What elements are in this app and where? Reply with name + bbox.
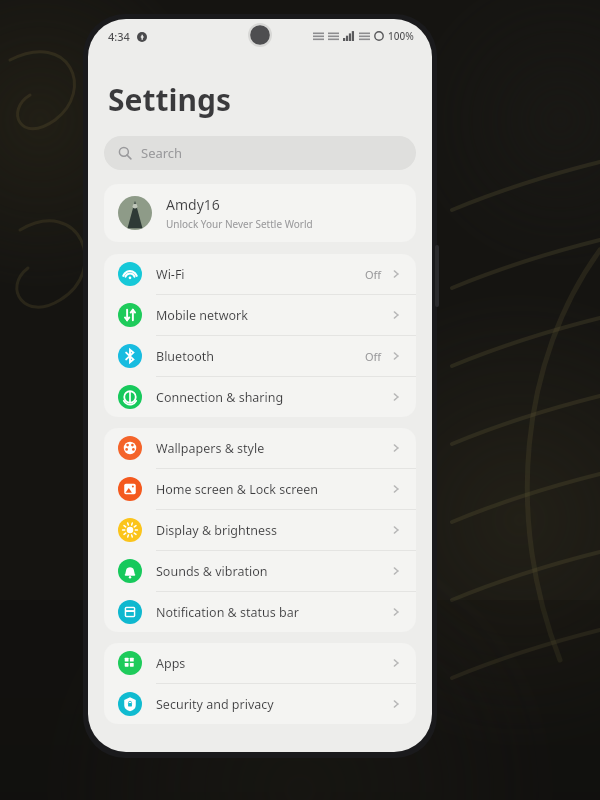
staticText: Settings (108, 79, 231, 120)
button[interactable]: Notification & status bar (104, 592, 416, 632)
button[interactable]: Home screen & Lock screen (104, 469, 416, 509)
staticText: Home screen & Lock screen (156, 481, 390, 498)
staticText: Apps (156, 655, 390, 672)
button[interactable]: Sounds & vibration (104, 551, 416, 591)
staticText: Wallpapers & style (156, 440, 390, 457)
staticText: Off (365, 349, 382, 364)
button[interactable]: Security and privacy (104, 684, 416, 724)
button[interactable]: Apps (104, 643, 416, 683)
staticText: Off (365, 267, 382, 282)
button[interactable]: Display & brightness (104, 510, 416, 550)
staticText: Security and privacy (156, 696, 390, 713)
staticText: Bluetooth (156, 348, 365, 365)
staticText: Notification & status bar (156, 604, 390, 621)
staticText: Amdy16 (166, 195, 220, 214)
staticText: 100% (388, 29, 414, 43)
button[interactable]: Mobile network (104, 295, 416, 335)
button[interactable]: Wallpapers & style (104, 428, 416, 468)
staticText: 4:34 (108, 29, 130, 44)
staticText: Display & brightness (156, 522, 390, 539)
button[interactable]: Search (104, 136, 416, 170)
staticText: Sounds & vibration (156, 563, 390, 580)
staticText: Mobile network (156, 307, 390, 324)
button[interactable]: Wi-Fi (104, 254, 416, 294)
staticText: Unlock Your Never Settle World (166, 217, 313, 231)
button[interactable]: Connection & sharing (104, 377, 416, 417)
staticText: Wi-Fi (156, 266, 365, 283)
staticText: Search (141, 144, 183, 162)
button[interactable]: Amdy16 (104, 184, 416, 242)
staticText: Connection & sharing (156, 389, 390, 406)
button[interactable]: Bluetooth (104, 336, 416, 376)
